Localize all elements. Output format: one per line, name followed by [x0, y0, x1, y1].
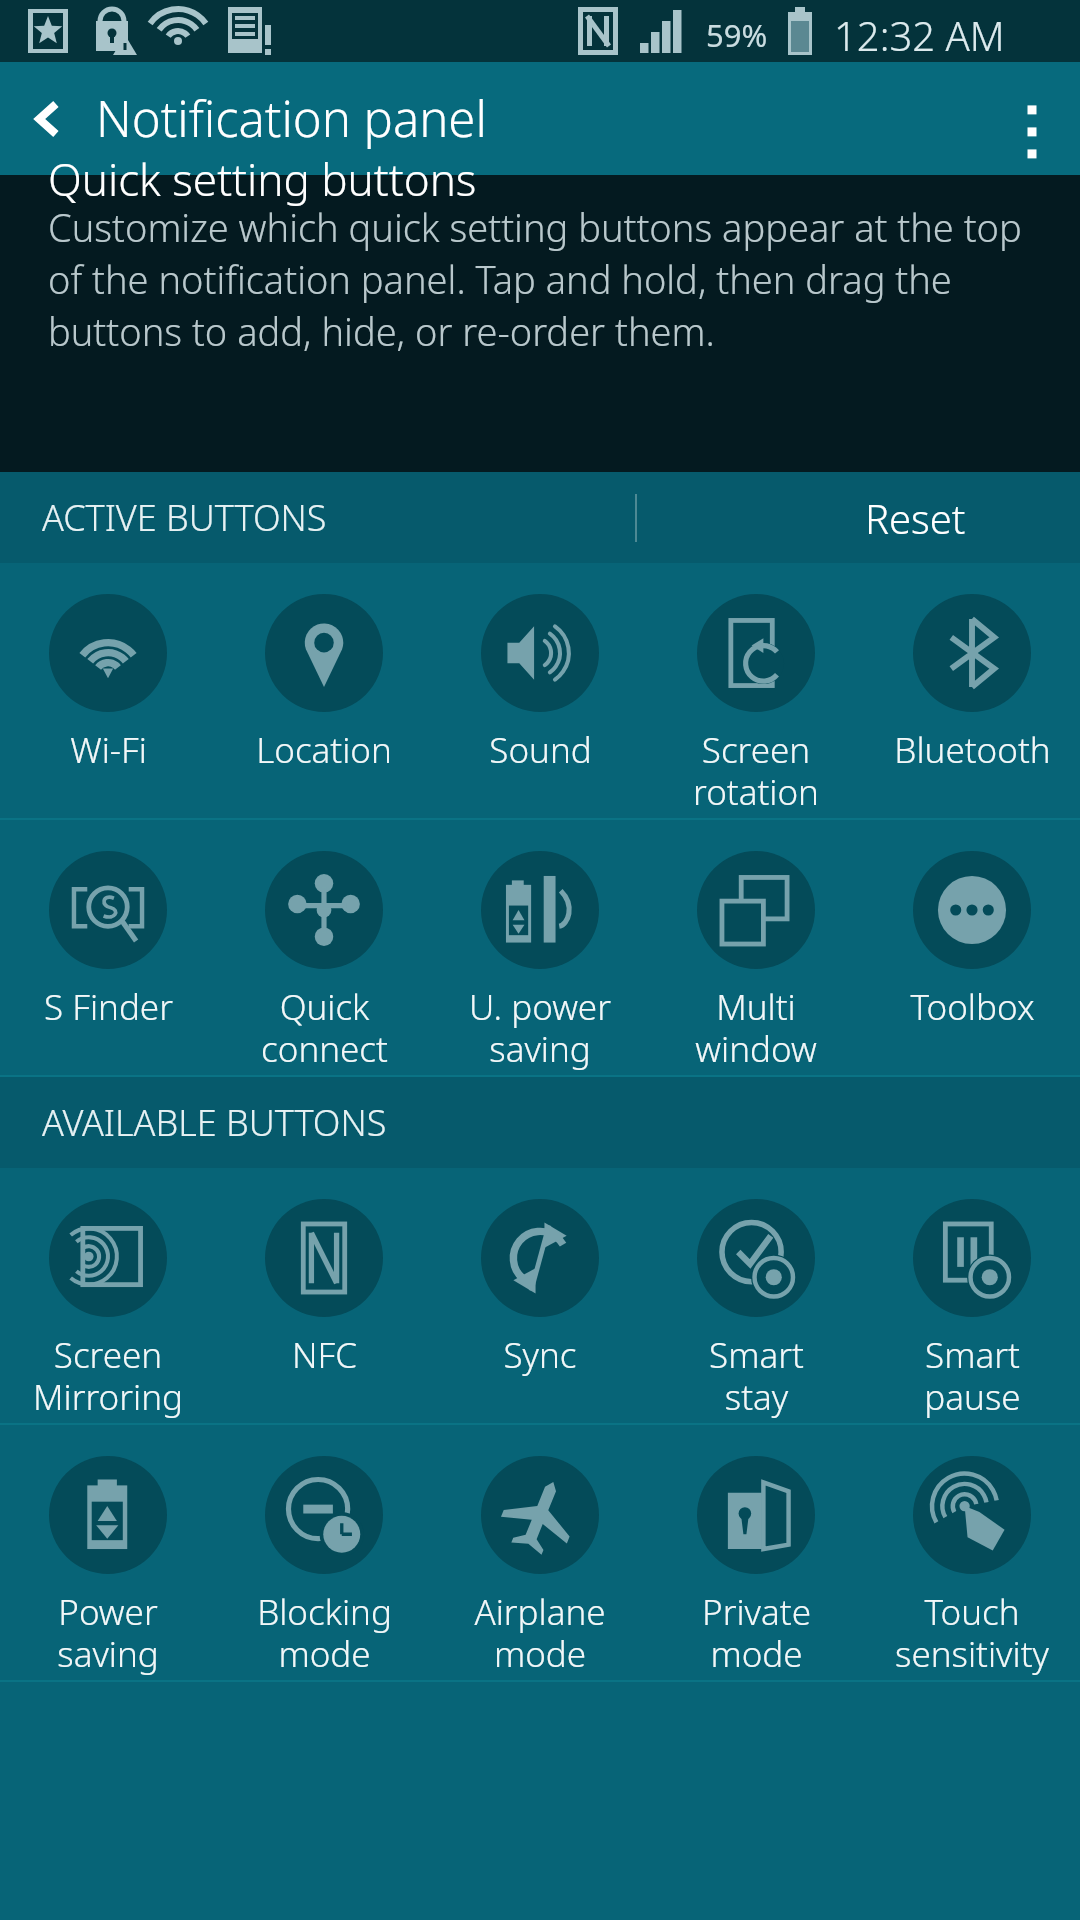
button[interactable]: Smart pause [864, 1168, 1080, 1423]
staticText: 12:32 AM [834, 8, 1005, 62]
button[interactable]: Reset [750, 472, 1080, 563]
staticText: NFC [292, 1331, 357, 1379]
staticText: Touch sensitivity [895, 1588, 1049, 1677]
staticText: U. power saving [469, 983, 611, 1072]
staticText: Smart stay [709, 1331, 804, 1420]
staticText: ACTIVE BUTTONS [42, 493, 327, 542]
button[interactable]: Wi-Fi [0, 563, 216, 818]
button[interactable]: Bluetooth [864, 563, 1080, 818]
staticText: S Finder [44, 983, 173, 1031]
button[interactable]: Sync [432, 1168, 648, 1423]
button[interactable]: Screen Mirroring [0, 1168, 216, 1423]
staticText: Location [256, 726, 392, 774]
button[interactable]: More options [984, 62, 1080, 175]
button[interactable]: Notification panel [96, 85, 984, 152]
button[interactable]: Airplane mode [432, 1425, 648, 1680]
button[interactable]: Sound [432, 563, 648, 818]
button[interactable]: Screen rotation [648, 563, 864, 818]
staticText: Sound [489, 726, 592, 774]
button[interactable]: Back [0, 62, 96, 175]
button[interactable]: Toolbox [864, 820, 1080, 1075]
button[interactable]: S Finder [0, 820, 216, 1075]
staticText: Multi window [695, 983, 817, 1072]
staticText: 59% [706, 14, 768, 56]
staticText: Blocking mode [257, 1588, 392, 1677]
button[interactable]: U. power saving [432, 820, 648, 1075]
staticText: Smart pause [924, 1331, 1021, 1420]
button[interactable]: Multi window [648, 820, 864, 1075]
staticText: Customize which quick setting buttons ap… [48, 201, 1030, 357]
staticText: Sync [503, 1331, 577, 1379]
staticText: Screen rotation [693, 726, 819, 815]
button[interactable]: Location [216, 563, 432, 818]
staticText: Private mode [702, 1588, 811, 1677]
button[interactable]: Quick connect [216, 820, 432, 1075]
button[interactable]: Touch sensitivity [864, 1425, 1080, 1680]
button[interactable]: Power saving [0, 1425, 216, 1680]
staticText: Airplane mode [474, 1588, 606, 1677]
button[interactable]: Blocking mode [216, 1425, 432, 1680]
button[interactable]: Private mode [648, 1425, 864, 1680]
staticText: Bluetooth [894, 726, 1051, 774]
staticText: Quick connect [261, 983, 388, 1072]
staticText: Wi-Fi [70, 726, 147, 774]
staticText: Screen Mirroring [33, 1331, 183, 1420]
button[interactable]: NFC [216, 1168, 432, 1423]
staticText: Reset [865, 491, 966, 545]
staticText: AVAILABLE BUTTONS [42, 1098, 387, 1147]
staticText: Power saving [57, 1588, 159, 1677]
button[interactable]: Smart stay [648, 1168, 864, 1423]
staticText: Toolbox [910, 983, 1035, 1031]
staticText: Quick setting buttons [48, 149, 477, 209]
